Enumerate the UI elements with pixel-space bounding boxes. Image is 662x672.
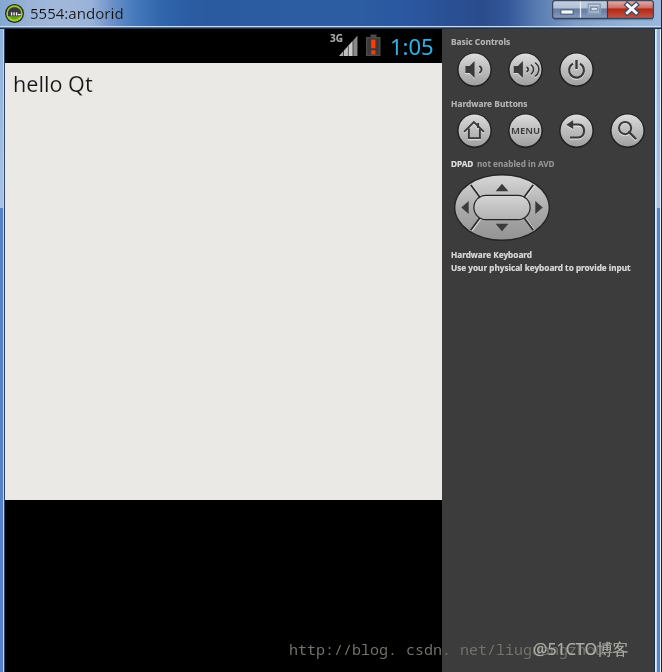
staticText: Hardware Buttons (451, 98, 528, 109)
button[interactable]: Minimize (552, 0, 581, 19)
staticText: 1:05 (390, 31, 434, 61)
button[interactable]: 5554:andorid (30, 3, 124, 23)
button[interactable]: Power (559, 52, 594, 87)
button[interactable]: Maximize (581, 0, 608, 19)
staticText: Hardware Keyboard (451, 249, 532, 260)
staticText: http://blog. csdn. net/liuguangzhou (289, 639, 605, 659)
staticText: DPAD (451, 158, 474, 169)
button[interactable]: D-pad (454, 174, 550, 241)
staticText: 3G (330, 31, 343, 45)
staticText: hello Qt (13, 69, 93, 98)
button[interactable]: MENU (508, 113, 543, 148)
staticText: not enabled in AVD (477, 158, 555, 169)
staticText: Use your physical keyboard to provide in… (451, 262, 631, 273)
button[interactable]: Volume up (508, 52, 543, 87)
button[interactable]: Volume down (457, 52, 492, 87)
button[interactable]: Close (608, 0, 655, 19)
staticText: @51CTO博客 (533, 638, 629, 660)
button[interactable]: Back (559, 113, 594, 148)
button[interactable]: Search (610, 113, 645, 148)
button[interactable]: Home (457, 113, 492, 148)
staticText: Basic Controls (451, 36, 511, 47)
staticText: MENU (511, 124, 541, 137)
